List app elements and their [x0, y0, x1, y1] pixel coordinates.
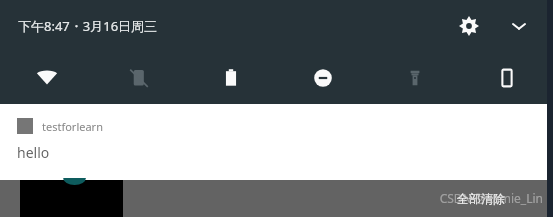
button[interactable]: Cast screen	[461, 52, 553, 104]
button[interactable]: testforlearn	[0, 104, 553, 180]
staticText: testforlearn	[42, 119, 103, 134]
button[interactable]: Settings	[447, 4, 491, 48]
button[interactable]: Auto rotate off	[93, 52, 185, 104]
staticText: 下午8:47・3月16日周三	[18, 17, 158, 35]
button[interactable]: 全部清除	[457, 191, 505, 206]
button[interactable]: Wi-Fi	[0, 52, 93, 104]
staticText: CSDN @Ramie_Lin	[439, 190, 543, 206]
button[interactable]: Expand	[497, 4, 541, 48]
staticText: 全部清除	[457, 191, 505, 206]
staticText: hello	[17, 143, 50, 162]
button[interactable]: Do not disturb	[277, 52, 369, 104]
button[interactable]: Battery saver	[185, 52, 277, 104]
button[interactable]: Flashlight	[369, 52, 461, 104]
